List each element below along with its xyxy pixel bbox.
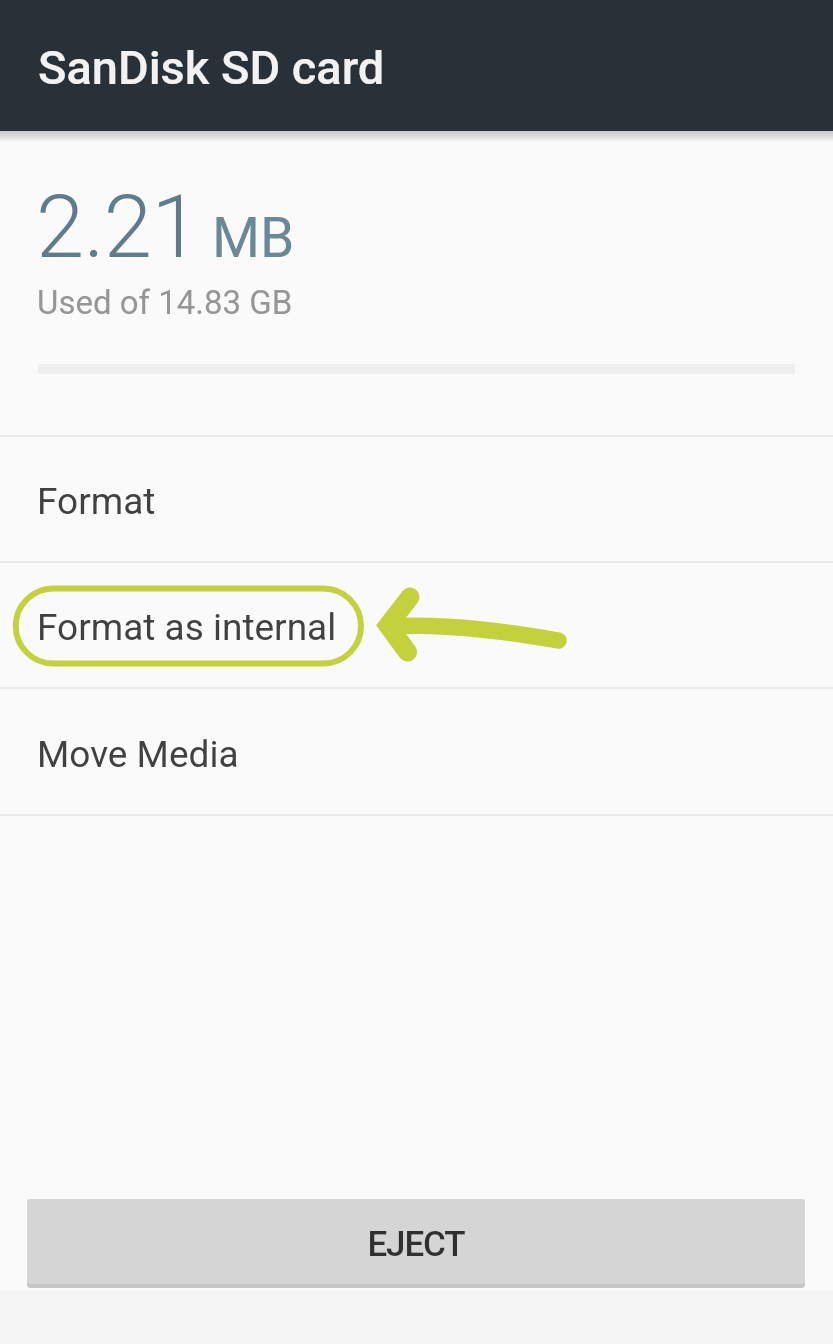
staticText: EJECT [367,1224,465,1265]
staticText: Move Media [37,733,239,776]
button[interactable]: Move Media [0,689,833,815]
staticText: SanDisk SD card [38,40,385,95]
other: Highlight pointing at Format as internal [0,575,833,675]
button[interactable]: Format as internal [0,563,833,688]
button[interactable]: EJECT [27,1199,805,1284]
staticText: Format as internal [37,606,337,649]
staticText: Format [37,480,156,523]
staticText: Used of 14.83 GB [37,283,293,322]
button[interactable]: Format [0,437,833,562]
staticText: MB [212,206,295,270]
staticText: 2.21 [36,176,200,278]
